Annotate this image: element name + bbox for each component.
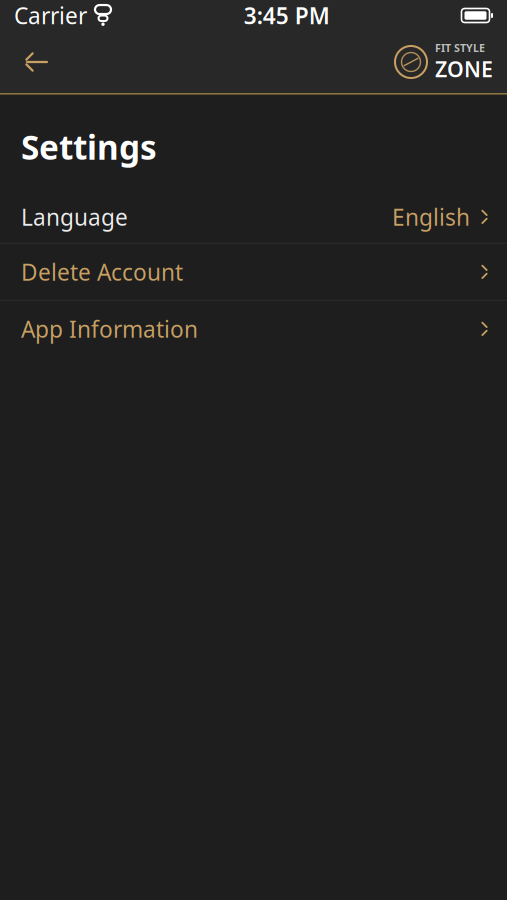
staticText: ZONE [435,55,493,83]
button[interactable]: App Information [0,301,507,357]
staticText: 3:45 PM [244,0,330,30]
staticText: Language [21,202,128,232]
staticText: Carrier [14,0,87,30]
button[interactable]: Back [14,39,60,85]
staticText: English [392,202,470,232]
button[interactable]: Delete Account [0,244,507,300]
staticText: Delete Account [21,257,183,287]
staticText: Settings [21,125,157,169]
staticText: App Information [21,314,198,344]
button[interactable]: Language [0,191,507,243]
staticText: FIT STYLE [435,41,485,55]
